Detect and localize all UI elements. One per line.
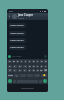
button[interactable]: w <box>12 60 15 63</box>
staticText: a <box>9 65 11 68</box>
button[interactable]: r <box>20 60 23 63</box>
staticText: ?123 <box>8 74 13 77</box>
button[interactable]: ⇧ <box>8 69 12 72</box>
button[interactable]: y <box>28 60 31 63</box>
button[interactable]: Send <box>43 79 47 83</box>
button[interactable]: d <box>18 65 22 68</box>
staticText: 9:41 <box>9 10 14 13</box>
staticText: Lorem ipsum dolor si <box>10 24 26 27</box>
staticText: n <box>37 69 39 72</box>
staticText: 🙂 <box>43 74 46 77</box>
staticText: w <box>13 60 15 63</box>
staticText: t <box>25 60 26 63</box>
staticText: ⇧ <box>9 69 11 72</box>
staticText: o <box>41 60 43 63</box>
button[interactable]: 🙂 <box>41 74 47 77</box>
staticText: d <box>19 65 21 68</box>
button[interactable]: , <box>14 74 19 77</box>
button[interactable]: n <box>36 69 39 72</box>
button[interactable]: e <box>16 60 19 63</box>
button[interactable]: k <box>40 65 43 68</box>
staticText: Lorem ipsum dolor si <box>10 39 26 42</box>
button[interactable]: Emoji <box>8 79 12 83</box>
staticText: Jane Cooper <box>18 13 34 17</box>
staticText: u <box>33 60 35 63</box>
staticText: g <box>29 65 31 68</box>
staticText: r <box>21 60 22 63</box>
other: Back <box>8 15 11 18</box>
button[interactable]: l <box>44 65 47 68</box>
staticText: s <box>14 65 16 68</box>
staticText: k <box>41 65 43 68</box>
button[interactable]: Attach <box>8 55 11 58</box>
staticText: j <box>37 65 38 68</box>
button[interactable]: j <box>36 65 39 68</box>
button[interactable]: . <box>34 74 40 77</box>
button[interactable]: u <box>32 60 35 63</box>
button[interactable]: ?123 <box>8 74 13 77</box>
staticText: Lorem ipsum dolor si <box>10 46 26 49</box>
button[interactable]: o <box>40 60 43 63</box>
button[interactable]: Lorem ipsum dolor si <box>9 45 26 50</box>
button[interactable]: g <box>28 65 31 68</box>
button[interactable]: t <box>24 60 27 63</box>
staticText: v <box>29 69 31 72</box>
button[interactable]: c <box>23 69 27 72</box>
staticText: z <box>14 69 16 72</box>
button[interactable]: f <box>23 65 27 68</box>
staticText: l <box>45 65 46 68</box>
button[interactable]: p <box>44 60 47 63</box>
button[interactable]: h <box>32 65 35 68</box>
button[interactable]: i <box>36 60 39 63</box>
staticText: m <box>40 69 43 72</box>
staticText: Lorem ipsum dolor si <box>10 32 26 35</box>
staticText: q <box>9 60 11 63</box>
staticText: h <box>33 65 35 68</box>
button[interactable]: b <box>32 69 35 72</box>
staticText: b <box>33 69 35 72</box>
staticText: f <box>25 65 26 68</box>
staticText: Message <box>12 55 22 58</box>
staticText: ⌫ <box>44 69 47 72</box>
button[interactable]: Lorem ipsum dolor si <box>9 23 26 28</box>
button[interactable]: Lorem ipsum dolor si <box>9 38 26 43</box>
staticText: x <box>19 69 21 72</box>
button[interactable]: x <box>18 69 22 72</box>
button[interactable]: z <box>13 69 17 72</box>
button[interactable]: Lorem ipsum dolor si <box>9 31 26 36</box>
button[interactable]: a <box>8 65 12 68</box>
button[interactable]: s <box>13 65 17 68</box>
button[interactable]: v <box>28 69 31 72</box>
staticText: c <box>24 69 26 72</box>
staticText: i <box>37 60 38 63</box>
button[interactable]: Back <box>7 13 48 20</box>
button[interactable]: Send <box>44 55 47 58</box>
staticText: e <box>17 60 19 63</box>
staticText: y <box>29 60 31 63</box>
staticText: . <box>37 74 38 77</box>
staticText: p <box>45 60 47 63</box>
button[interactable]: ⌫ <box>44 69 47 72</box>
staticText: , <box>16 74 17 77</box>
button[interactable]: q <box>8 60 11 63</box>
staticText: online <box>18 17 24 20</box>
button[interactable]: m <box>40 69 43 72</box>
